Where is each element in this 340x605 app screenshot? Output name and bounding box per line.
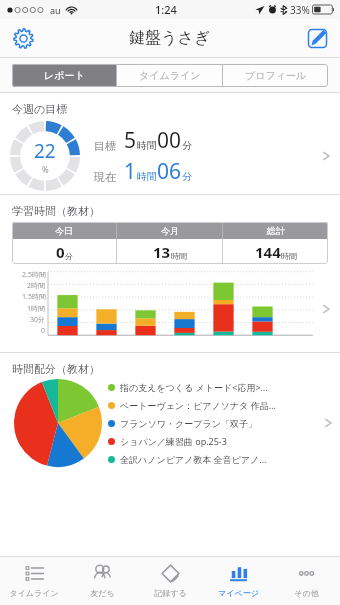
staticText: 指の支えをつくる メトード<応用>…	[120, 381, 268, 393]
staticText: 時間配分（教材）	[12, 362, 100, 376]
staticText: 今週の目標	[12, 102, 68, 116]
staticText: 1.5時間	[22, 292, 46, 302]
staticText: 現在	[94, 170, 116, 184]
staticText: 学習時間（教材）	[12, 204, 100, 218]
staticText: 00	[157, 126, 182, 155]
staticText: レポート	[44, 69, 85, 82]
staticText: 分	[182, 170, 192, 183]
button[interactable]: マイページ	[204, 557, 272, 605]
staticText: 0	[41, 326, 46, 336]
staticText: 2.5時間	[22, 270, 46, 280]
staticText: マイページ	[218, 588, 259, 598]
staticText: 5	[124, 126, 137, 155]
staticText: 総計	[267, 225, 285, 236]
staticText: 分	[65, 251, 73, 261]
staticText: 時間	[281, 251, 297, 261]
staticText: 2時間	[27, 281, 46, 291]
staticText: 22	[34, 138, 56, 164]
staticText: 目標	[94, 139, 116, 153]
staticText: プロフィール	[245, 69, 307, 82]
staticText: ベートーヴェン：ピアノソナタ 作品…	[120, 399, 276, 411]
button[interactable]: プロフィール	[223, 64, 328, 87]
button[interactable]: その他	[272, 557, 340, 605]
staticText: 時間	[137, 170, 157, 183]
staticText: 1	[124, 157, 137, 186]
staticText: 時間	[137, 139, 157, 152]
button[interactable]: Settings	[8, 23, 38, 53]
staticText: 全訳ハノンピアノ教本 全音ピアノ…	[120, 453, 267, 465]
staticText: 1:24	[155, 2, 177, 17]
staticText: タイムライン	[139, 69, 201, 82]
staticText: 記録する	[154, 588, 187, 598]
staticText: 30分	[30, 315, 46, 325]
staticText: 13	[153, 242, 171, 262]
button[interactable]: レポート	[12, 64, 116, 87]
staticText: au	[50, 4, 61, 16]
staticText: 1時間	[27, 304, 46, 314]
button[interactable]: 2.5時間	[0, 268, 340, 350]
button[interactable]: タイムライン	[117, 64, 222, 87]
staticText: 分	[182, 139, 192, 152]
staticText: タイムライン	[9, 588, 59, 598]
button[interactable]: 記録する	[136, 557, 204, 605]
staticText: その他	[294, 588, 319, 598]
staticText: ショパン／練習曲 op.25-3	[120, 435, 227, 447]
button[interactable]: Edit	[302, 23, 332, 53]
staticText: 144	[255, 242, 281, 262]
staticText: 今日	[55, 225, 73, 236]
staticText: 鍵盤うさぎ	[129, 28, 211, 48]
staticText: 0	[56, 242, 65, 262]
button[interactable]: 友だち	[68, 557, 136, 605]
staticText: 時間	[171, 251, 187, 261]
button[interactable]: 指の支えをつくる メトード<応用>…	[0, 378, 340, 468]
staticText: フランソワ・クープラン「双子」	[120, 418, 257, 429]
staticText: %	[42, 164, 49, 175]
staticText: 今月	[161, 225, 179, 236]
button[interactable]: タイムライン	[0, 557, 68, 605]
staticText: 33%	[290, 3, 310, 17]
staticText: 06	[157, 157, 182, 186]
staticText: 友だち	[90, 588, 115, 598]
button[interactable]: 22	[0, 118, 340, 194]
